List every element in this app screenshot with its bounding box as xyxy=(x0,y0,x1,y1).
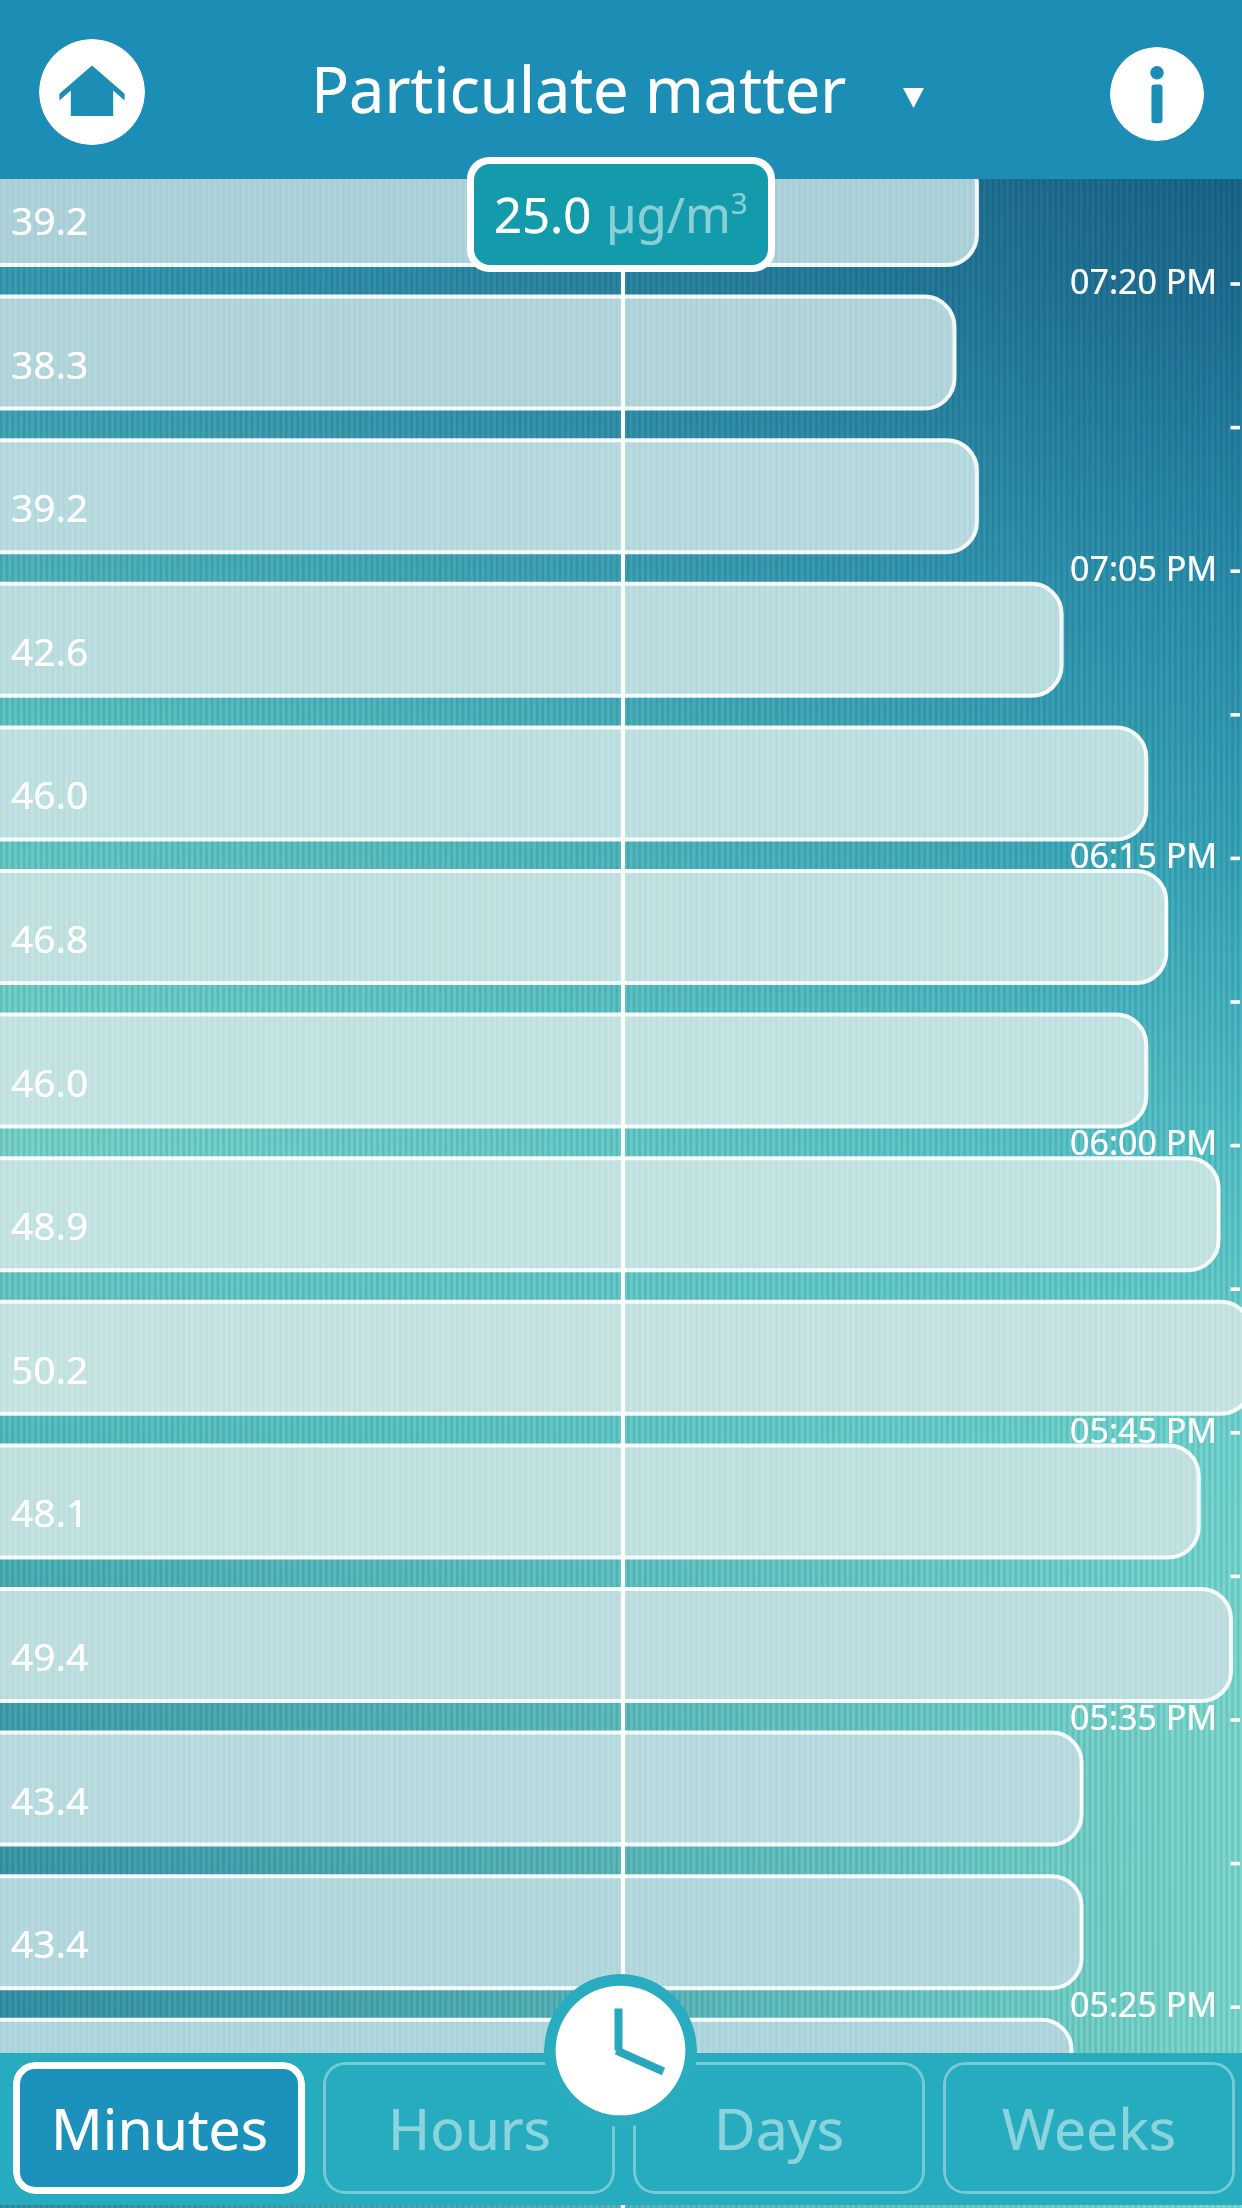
button[interactable]: Days xyxy=(633,2062,925,2194)
staticText: 05:45 PM xyxy=(1070,1407,1218,1453)
staticText: 48.1 xyxy=(11,1485,89,1538)
staticText: 05:35 PM xyxy=(1070,1694,1218,1740)
staticText: µg/m xyxy=(606,181,731,248)
button[interactable]: Info xyxy=(1110,47,1204,141)
button[interactable]: Particulate matter xyxy=(311,46,924,132)
staticText: 06:00 PM xyxy=(1070,1119,1218,1165)
button[interactable]: Select time range xyxy=(544,1974,697,2127)
staticText: Particulate matter xyxy=(311,46,847,132)
button[interactable]: 25.0 xyxy=(474,164,768,265)
staticText: Minutes xyxy=(51,2089,268,2167)
staticText: 48.9 xyxy=(11,1198,89,1251)
staticText: 42.6 xyxy=(11,624,89,677)
staticText: 05:25 PM xyxy=(1070,1981,1218,2027)
staticText: 50.2 xyxy=(11,1342,89,1395)
staticText: Weeks xyxy=(1002,2089,1176,2167)
button[interactable]: Home xyxy=(39,39,145,145)
staticText: 39.2 xyxy=(11,193,89,246)
staticText: 07:05 PM xyxy=(1070,545,1218,591)
staticText: 25.0 xyxy=(494,181,592,248)
staticText: 07:20 PM xyxy=(1070,258,1218,304)
staticText: 39.2 xyxy=(11,480,89,533)
staticText: 43.4 xyxy=(11,1916,89,1969)
button[interactable]: Minutes xyxy=(13,2062,305,2194)
button[interactable]: Hours xyxy=(323,2062,615,2194)
staticText: 06:15 PM xyxy=(1070,832,1218,878)
staticText: Hours xyxy=(388,2089,551,2167)
staticText: Days xyxy=(714,2089,844,2167)
staticText: 3 xyxy=(731,183,748,222)
staticText: 46.0 xyxy=(11,767,89,820)
staticText: 43.4 xyxy=(11,1773,89,1826)
staticText: 46.8 xyxy=(11,911,89,964)
button[interactable]: Weeks xyxy=(943,2062,1235,2194)
staticText: 49.4 xyxy=(11,1629,89,1682)
staticText: 38.3 xyxy=(11,337,89,390)
staticText: 46.0 xyxy=(11,1055,89,1108)
